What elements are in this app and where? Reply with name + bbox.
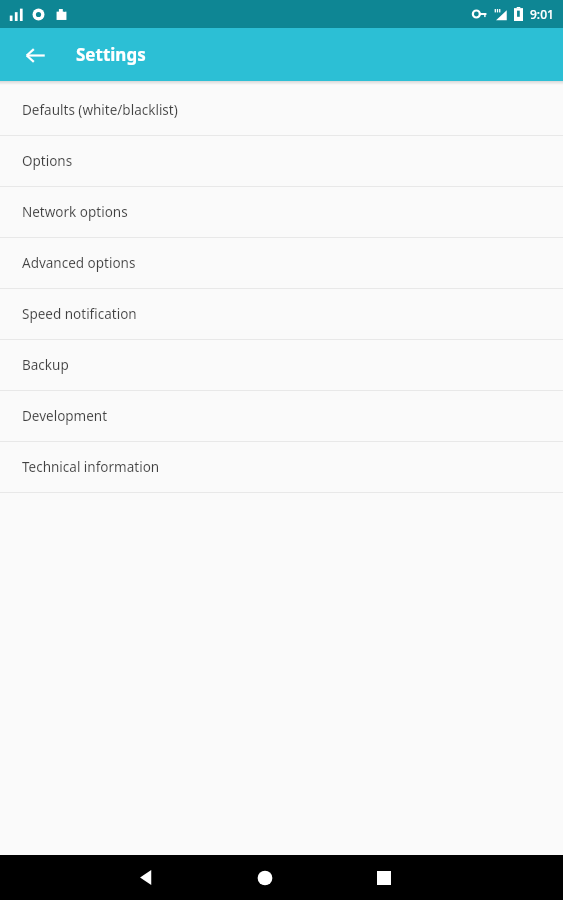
- staticText: Backup: [22, 356, 69, 374]
- staticText: Development: [22, 407, 108, 425]
- button[interactable]: Network options: [0, 187, 563, 237]
- button[interactable]: Speed notification: [0, 289, 563, 339]
- button[interactable]: Defaults (white/blacklist): [0, 85, 563, 135]
- staticText: Options: [22, 152, 73, 170]
- button[interactable]: Options: [0, 136, 563, 186]
- staticText: 9:01: [530, 6, 554, 22]
- button[interactable]: Back: [120, 855, 172, 900]
- staticText: Technical information: [22, 458, 160, 476]
- staticText: Advanced options: [22, 254, 136, 272]
- button[interactable]: Home: [239, 855, 291, 900]
- button[interactable]: Advanced options: [0, 238, 563, 288]
- button[interactable]: Development: [0, 391, 563, 441]
- button[interactable]: Backup: [0, 340, 563, 390]
- staticText: Settings: [76, 43, 146, 66]
- staticText: Defaults (white/blacklist): [22, 101, 178, 119]
- button[interactable]: Recent apps: [358, 855, 410, 900]
- staticText: Network options: [22, 203, 128, 221]
- staticText: Speed notification: [22, 305, 137, 323]
- button[interactable]: Back: [14, 34, 56, 76]
- button[interactable]: Technical information: [0, 442, 563, 492]
